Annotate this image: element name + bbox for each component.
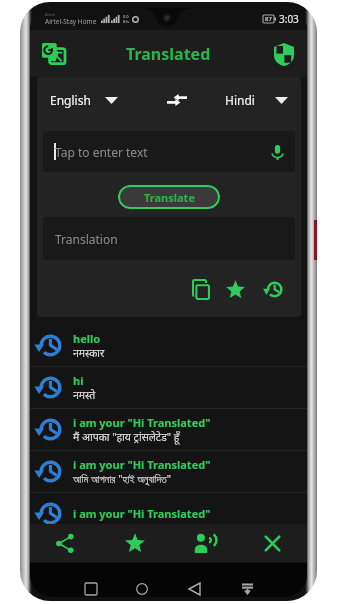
staticText: English — [50, 92, 91, 108]
staticText: 87 — [265, 15, 272, 23]
staticText: Translate — [144, 190, 195, 205]
button[interactable]: Hindi — [216, 88, 295, 112]
button[interactable]: Speak — [169, 524, 238, 562]
staticText: 3:03 — [279, 12, 299, 26]
staticText: i am your "Hi Translated" — [73, 415, 211, 430]
button[interactable]: Favorites — [100, 524, 169, 562]
staticText: Hindi — [225, 92, 255, 108]
staticText: 0.0 — [123, 14, 129, 19]
button[interactable]: Hide keyboard — [234, 575, 261, 597]
staticText: i am your "Hi Translated" — [73, 457, 211, 472]
button[interactable]: Swap languages — [159, 85, 195, 115]
button[interactable]: Translation — [43, 217, 295, 260]
staticText: मैं आपका "हाय ट्रांसलेटेड" हूँ — [73, 430, 180, 444]
button[interactable]: Voice input — [265, 140, 289, 164]
staticText: नमस्कार — [73, 346, 105, 360]
button[interactable]: Back — [181, 575, 208, 597]
button[interactable]: Favorite — [223, 277, 247, 301]
button[interactable]: hi — [30, 367, 307, 408]
button[interactable]: History — [261, 277, 285, 301]
staticText: hi — [73, 373, 84, 388]
staticText: नमस्ते — [73, 388, 96, 402]
button[interactable]: Security — [269, 39, 299, 69]
button[interactable]: Recents — [77, 575, 104, 597]
button[interactable]: Close — [238, 524, 307, 562]
staticText: Tap to enter text — [55, 144, 148, 160]
button[interactable]: i am your "Hi Translated" — [30, 409, 307, 450]
button[interactable]: Home — [128, 575, 155, 597]
staticText: i am your "Hi Translated" — [73, 506, 211, 521]
staticText: K/s — [123, 19, 129, 24]
button[interactable]: i am your "Hi Translated" — [30, 493, 307, 534]
button[interactable]: Tap to enter text — [43, 131, 295, 172]
staticText: Airtel — [45, 12, 55, 17]
staticText: Translated — [126, 43, 211, 65]
button[interactable]: i am your "Hi Translated" — [30, 451, 307, 492]
button[interactable]: Translate — [36, 37, 70, 71]
button[interactable]: English — [41, 88, 125, 112]
button[interactable]: Copy — [189, 277, 213, 301]
staticText: আমি আপনার "হাই অনুবাদিত" — [73, 472, 172, 486]
button[interactable]: Translate — [118, 185, 220, 209]
staticText: Airtel-Stay Home — [45, 17, 97, 26]
button[interactable]: hello — [30, 325, 307, 366]
staticText: hello — [73, 331, 101, 346]
staticText: Translation — [55, 231, 118, 247]
button[interactable]: Share — [30, 524, 100, 562]
